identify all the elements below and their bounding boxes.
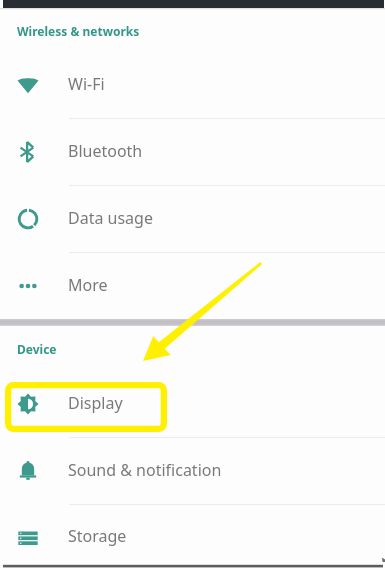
- button[interactable]: Display: [0, 371, 385, 437]
- staticText: Bluetooth: [68, 140, 143, 162]
- staticText: Sound & notification: [68, 459, 222, 481]
- staticText: Wireless & networks: [17, 23, 140, 39]
- button[interactable]: Data usage: [0, 186, 385, 252]
- staticText: Display: [68, 392, 123, 414]
- staticText: More: [68, 274, 108, 296]
- staticText: Device: [17, 341, 57, 357]
- staticText: Storage: [68, 525, 127, 547]
- button[interactable]: Storage: [0, 505, 385, 568]
- button[interactable]: Sound & notification: [0, 438, 385, 504]
- staticText: Data usage: [68, 207, 153, 229]
- button[interactable]: More: [0, 253, 385, 319]
- staticText: Wi-Fi: [68, 73, 105, 95]
- button[interactable]: Bluetooth: [0, 119, 385, 185]
- button[interactable]: Wi-Fi: [0, 52, 385, 118]
